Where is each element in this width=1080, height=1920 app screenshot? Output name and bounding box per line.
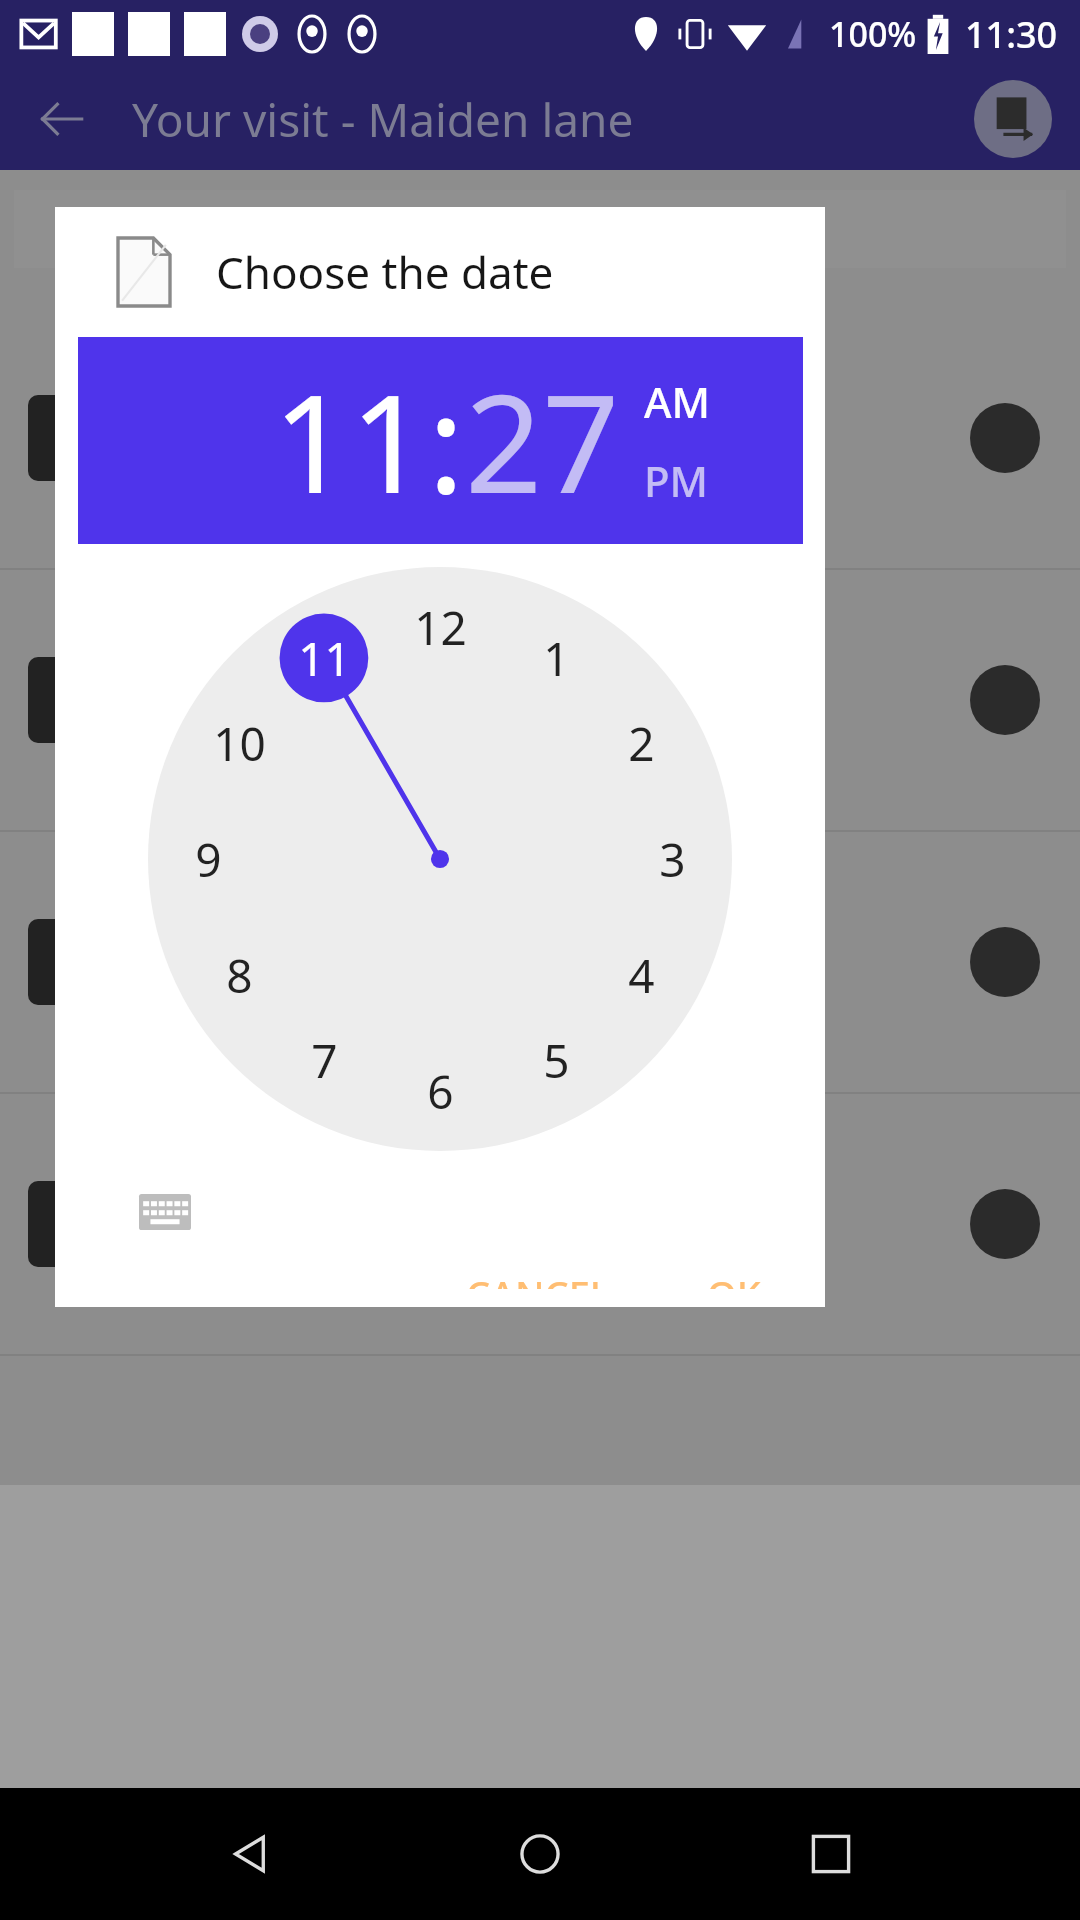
staticText: 10 [213,712,266,775]
staticText: CANCEL [466,1268,611,1289]
staticText: 11 [273,349,428,533]
staticText: 3 [659,828,686,891]
button[interactable]: AM [644,369,711,434]
button[interactable]: 27 [465,349,620,533]
button[interactable]: Switch to keyboard input [135,1182,195,1242]
staticText: OK [707,1268,761,1289]
staticText: 6 [427,1060,454,1123]
staticText: : [428,349,465,533]
staticText: Your visit - Maiden lane [132,88,634,151]
button[interactable]: OK [683,1250,785,1307]
staticText: 12 [414,596,467,659]
staticText: 8 [226,944,253,1007]
staticText: Choose the date [216,242,554,302]
staticText: 1 [543,627,570,690]
staticText: 5 [543,1029,570,1092]
staticText: AM [644,373,711,430]
staticText: 11:30 [965,10,1058,59]
staticText: 9 [195,828,222,891]
button[interactable]: Clock dial [148,567,732,1151]
staticText: 100% [829,11,917,57]
button[interactable]: PM [644,448,709,513]
button[interactable]: Recent apps [789,1812,873,1896]
staticText: 4 [628,944,655,1007]
staticText: 7 [311,1029,338,1092]
button[interactable]: Back [26,84,96,154]
staticText: PM [644,452,709,509]
button[interactable]: Export report [974,80,1052,158]
staticText: 27 [465,349,620,533]
staticText: 11 [298,627,351,690]
button[interactable]: Back [207,1812,291,1896]
button[interactable]: Home [498,1812,582,1896]
button[interactable]: CANCEL [442,1250,635,1307]
staticText: 2 [628,712,655,775]
button[interactable]: 11 [273,349,428,533]
